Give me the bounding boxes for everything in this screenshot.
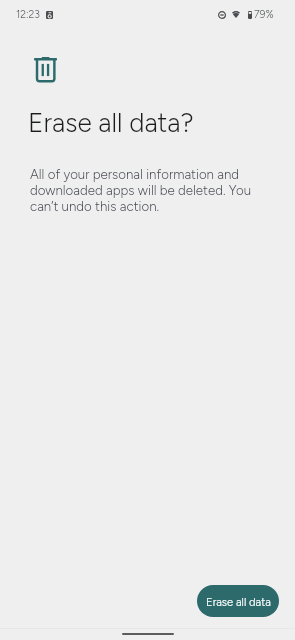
staticText: Erase all data? <box>28 107 194 139</box>
staticText: 79% <box>254 8 274 21</box>
other: Delete <box>34 57 57 82</box>
staticText: Erase all data <box>206 595 271 608</box>
staticText: All of your personal information and dow… <box>30 166 262 214</box>
other: Wi-Fi <box>232 11 240 18</box>
other: Battery 79 percent <box>248 11 252 19</box>
other: Do not disturb <box>218 11 226 19</box>
staticText: 12:23 <box>16 8 40 21</box>
button[interactable]: Erase all data <box>197 585 279 617</box>
other: Notification <box>46 11 53 19</box>
